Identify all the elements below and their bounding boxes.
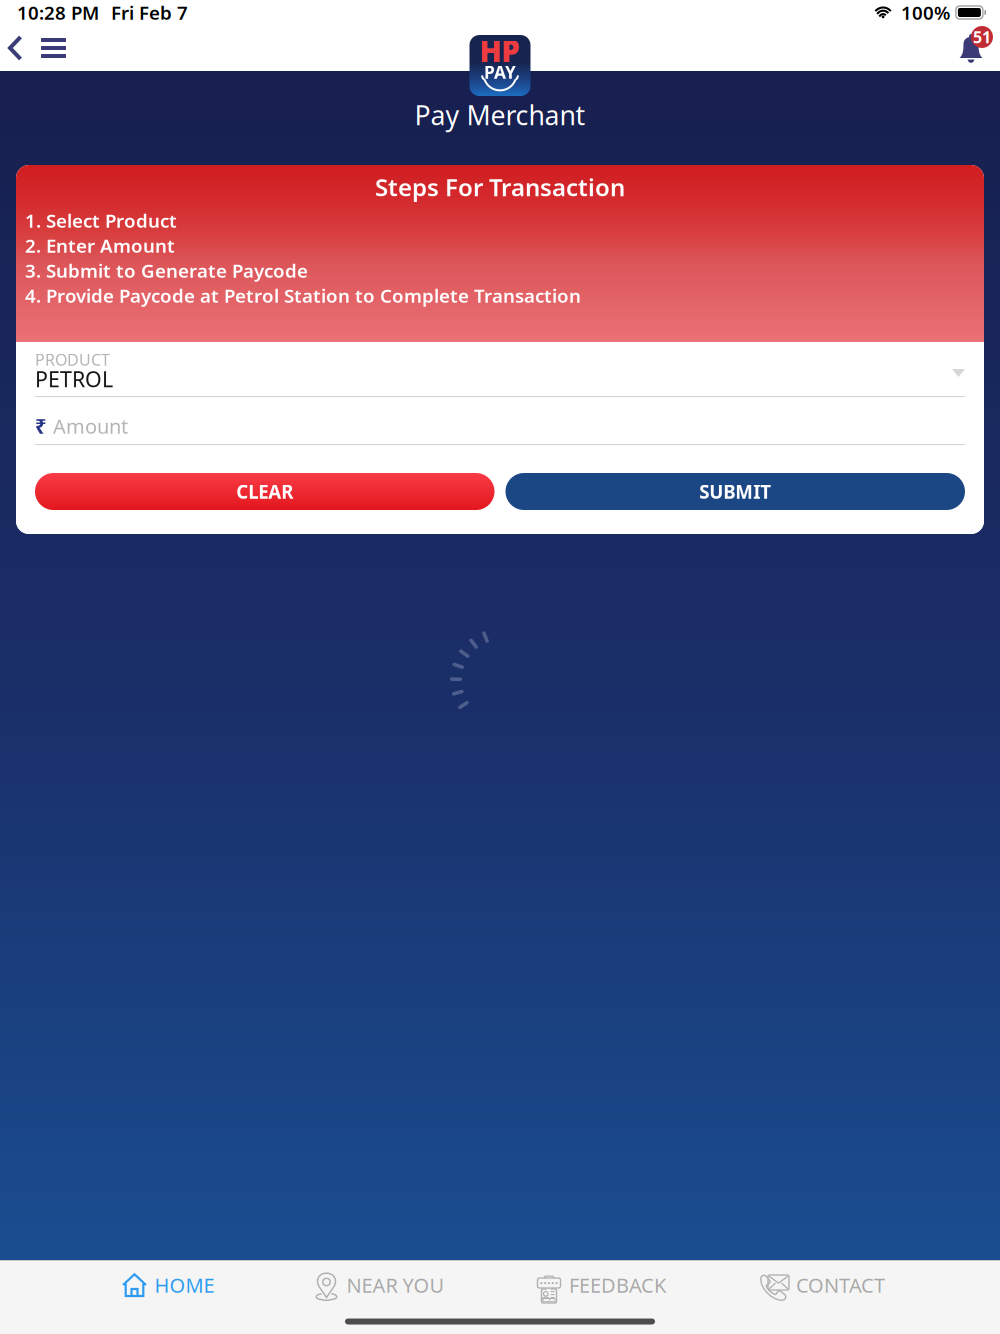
staticText: PRODUCT: [35, 349, 110, 370]
staticText: PAY: [484, 60, 516, 83]
staticText: Amount: [53, 413, 128, 439]
staticText: 4. Provide Paycode at Petrol Station to …: [25, 283, 581, 308]
staticText: Steps For Transaction: [375, 171, 625, 203]
staticText: HP: [479, 31, 520, 70]
staticText: Fri Feb 7: [111, 0, 188, 25]
staticText: PETROL: [35, 365, 113, 393]
button[interactable]: CLEAR: [35, 473, 494, 510]
staticText: 100%: [901, 0, 950, 25]
button[interactable]: SUBMIT: [505, 473, 965, 510]
staticText: HOME: [154, 1272, 214, 1298]
button[interactable]: CONTACT: [755, 1261, 889, 1309]
staticText: 10:28 PM: [17, 0, 99, 25]
staticText: SUBMIT: [699, 479, 771, 504]
staticText: 2. Enter Amount: [25, 233, 175, 258]
staticText: ₹: [35, 413, 46, 439]
staticText: CLEAR: [236, 479, 293, 504]
button[interactable]: FEEDBACK: [531, 1261, 671, 1309]
button[interactable]: Back: [0, 25, 31, 71]
button[interactable]: Menu: [31, 25, 76, 71]
staticText: Pay Merchant: [414, 97, 585, 133]
button[interactable]: HOME: [109, 1261, 227, 1309]
button[interactable]: NEAR YOU: [311, 1261, 447, 1309]
staticText: 3. Submit to Generate Paycode: [25, 258, 308, 283]
staticText: CONTACT: [796, 1272, 885, 1298]
staticText: FEEDBACK: [569, 1272, 666, 1298]
staticText: NEAR YOU: [346, 1272, 444, 1298]
staticText: 1. Select Product: [25, 208, 177, 233]
button[interactable]: Notifications: [946, 25, 996, 71]
staticText: 51: [973, 26, 991, 48]
